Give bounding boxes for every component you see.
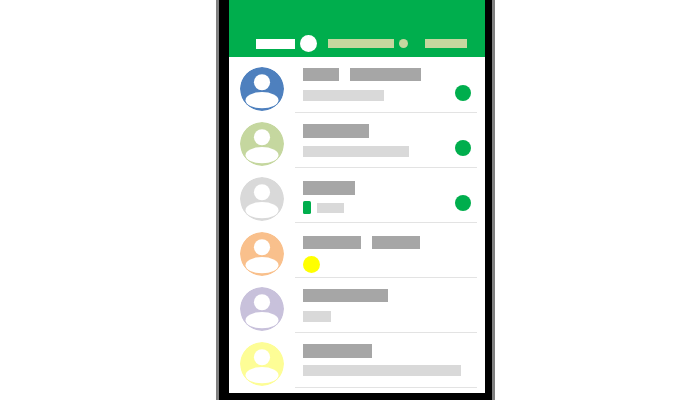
other: Contact avatar	[240, 177, 284, 221]
button[interactable]: Menu	[229, 0, 485, 57]
other: Contact avatar	[240, 67, 284, 111]
button[interactable]	[229, 112, 485, 167]
button[interactable]	[229, 57, 485, 112]
button[interactable]	[229, 277, 485, 332]
button[interactable]	[229, 332, 485, 387]
other: Contact avatar	[240, 232, 284, 276]
button[interactable]	[229, 167, 485, 222]
other: Contact avatar	[240, 287, 284, 331]
other: Contact avatar	[240, 122, 284, 166]
button[interactable]	[229, 222, 485, 277]
other: Contact avatar	[240, 342, 284, 386]
